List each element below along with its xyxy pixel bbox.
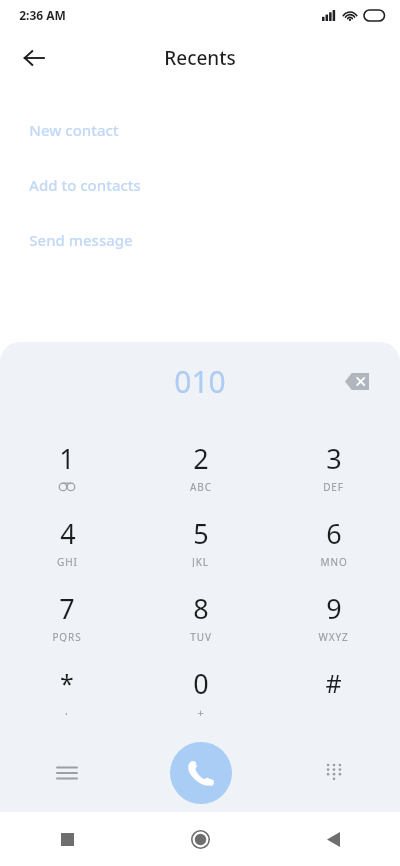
staticText: TUV [190,630,212,642]
button[interactable]: * [0,653,134,728]
staticText: 010 [174,361,226,402]
button[interactable]: Back [12,36,56,80]
button[interactable]: Call [170,742,232,804]
button[interactable]: Back [267,812,400,866]
button[interactable]: Menu [43,749,91,797]
staticText: ABC [190,480,212,492]
staticText: Add to contacts [29,175,141,195]
staticText: 6 [326,515,342,552]
staticText: Send message [29,230,133,250]
staticText: 3 [326,440,342,477]
staticText: 2 [193,440,209,477]
button[interactable]: Dialpad [310,749,358,797]
button[interactable]: 4 [0,503,134,578]
staticText: 0 [193,665,209,702]
button[interactable]: Send message [0,212,400,267]
staticText: PQRS [52,630,82,642]
button[interactable]: Delete [336,360,378,402]
staticText: 7 [59,590,75,627]
button[interactable]: 9 [267,578,400,653]
staticText: 4 [60,515,76,552]
button[interactable]: # [267,653,400,728]
staticText: 5 [193,515,209,552]
button[interactable]: Recent apps [0,812,134,866]
staticText: # [325,666,342,700]
staticText: 1 [59,440,75,477]
button[interactable]: New contact [0,102,400,157]
staticText: 8 [193,590,209,627]
staticText: * [60,666,74,700]
staticText: + [197,705,205,717]
button[interactable]: 7 [0,578,134,653]
staticText: , [65,703,69,715]
staticText: New contact [29,120,119,140]
staticText: GHI [57,555,78,567]
button[interactable]: Add to contacts [0,157,400,212]
button[interactable]: 6 [267,503,400,578]
button[interactable]: 8 [134,578,267,653]
button[interactable]: Home [134,812,267,866]
staticText: Recents [164,45,236,71]
button[interactable]: 1 [0,428,134,503]
button[interactable]: 0 [134,653,267,728]
button[interactable]: 2 [134,428,267,503]
staticText: 9 [326,590,342,627]
staticText: JKL [192,555,209,567]
staticText: MNO [320,555,348,567]
staticText: WXYZ [318,630,349,642]
button[interactable]: 3 [267,428,400,503]
staticText: 2:36 AM [19,7,66,23]
staticText: DEF [323,480,344,492]
button[interactable]: 5 [134,503,267,578]
